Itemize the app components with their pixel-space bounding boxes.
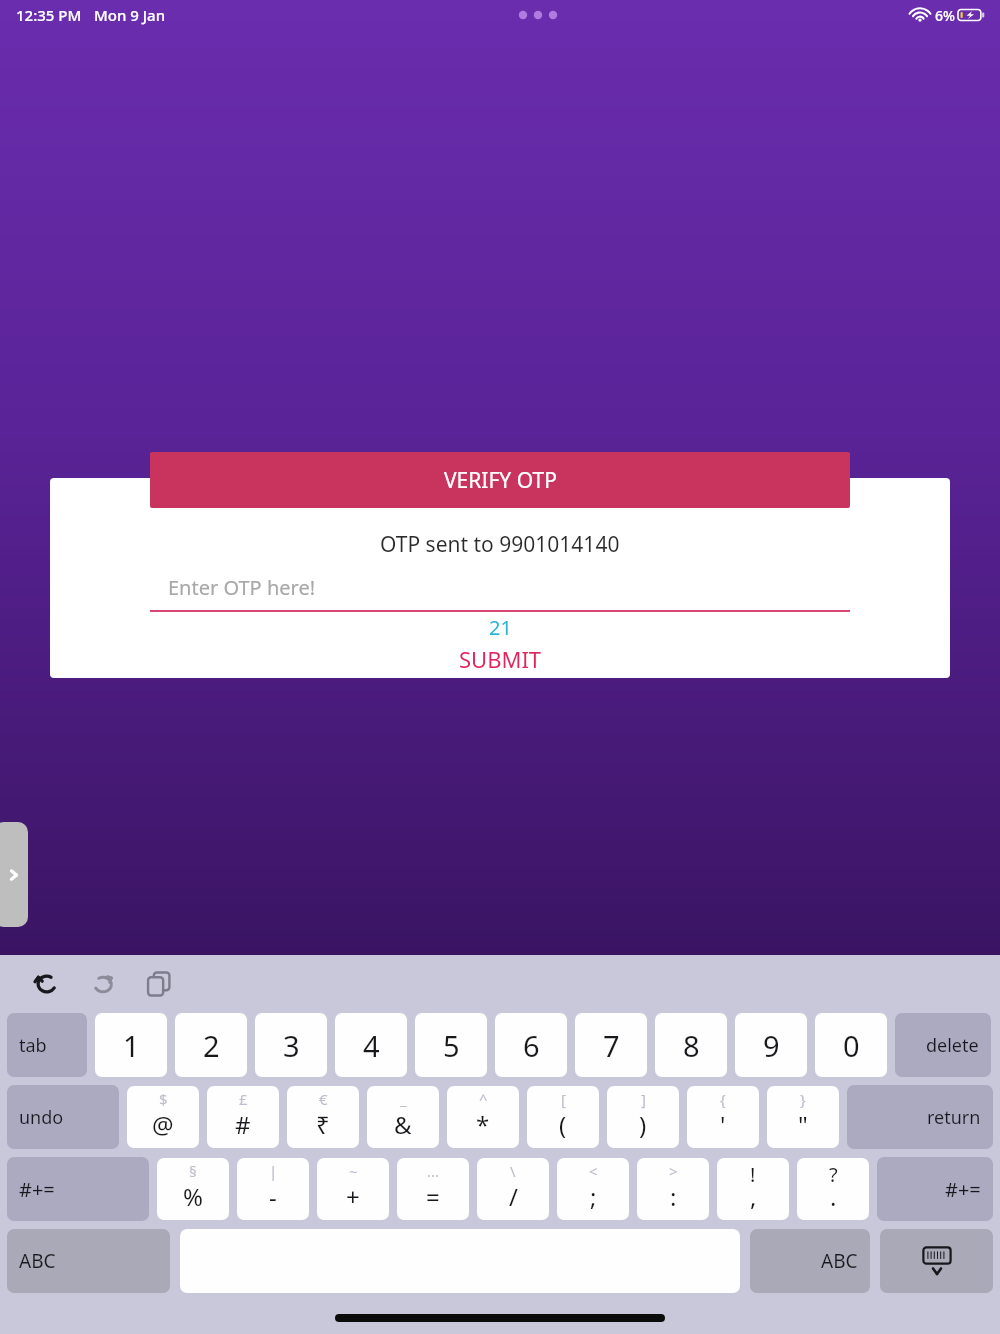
button[interactable]: Paste	[138, 963, 180, 1005]
button[interactable]: 6	[495, 1013, 567, 1077]
staticText: VERIFY OTP	[444, 466, 557, 495]
staticText: OTP sent to 9901014140	[380, 530, 620, 559]
staticText: tab	[19, 1033, 47, 1058]
button[interactable]: Open slide over	[0, 822, 28, 927]
button[interactable]: ABC	[7, 1229, 170, 1293]
button[interactable]: ?	[797, 1158, 869, 1220]
staticText: )	[639, 1108, 647, 1141]
button[interactable]: {	[687, 1086, 759, 1148]
staticText: 1	[123, 1026, 140, 1065]
button[interactable]: €	[287, 1086, 359, 1148]
staticText: |	[269, 1161, 278, 1181]
button[interactable]: }	[767, 1086, 839, 1148]
button[interactable]: |	[237, 1158, 309, 1220]
staticText: >	[669, 1161, 678, 1181]
staticText: (	[559, 1108, 567, 1141]
staticText: ~	[349, 1161, 358, 1181]
staticText: §	[189, 1161, 197, 1181]
button[interactable]: \	[477, 1158, 549, 1220]
button[interactable]: 1	[95, 1013, 167, 1077]
staticText: delete	[926, 1033, 979, 1058]
staticText: -	[269, 1180, 277, 1213]
button[interactable]: ]	[607, 1086, 679, 1148]
staticText: €	[319, 1089, 328, 1109]
button[interactable]: _	[367, 1086, 439, 1148]
button[interactable]: <	[557, 1158, 629, 1220]
staticText: undo	[19, 1105, 64, 1130]
staticText: 9	[763, 1026, 780, 1065]
staticText: Enter OTP here!	[168, 574, 316, 601]
button[interactable]: [	[527, 1086, 599, 1148]
button[interactable]: Hide keyboard	[880, 1229, 993, 1293]
button[interactable]: >	[637, 1158, 709, 1220]
button[interactable]: !	[717, 1158, 789, 1220]
button[interactable]: 9	[735, 1013, 807, 1077]
button[interactable]: ^	[447, 1086, 519, 1148]
staticText: 2	[203, 1026, 220, 1065]
button[interactable]: …	[397, 1158, 469, 1220]
staticText: 5	[443, 1026, 460, 1065]
staticText: ^	[479, 1089, 488, 1109]
button[interactable]: £	[207, 1086, 279, 1148]
button[interactable]: $	[127, 1086, 199, 1148]
button[interactable]: delete	[895, 1013, 991, 1077]
button[interactable]: #+=	[7, 1157, 149, 1221]
staticText: <	[589, 1161, 598, 1181]
staticText: return	[927, 1105, 981, 1130]
staticText: 8	[683, 1026, 700, 1065]
staticText: 21	[489, 614, 512, 641]
staticText: \	[510, 1161, 516, 1181]
button[interactable]: 8	[655, 1013, 727, 1077]
staticText: ABC	[821, 1248, 858, 1274]
staticText: 12:35 PM	[16, 5, 82, 25]
staticText: #	[235, 1108, 251, 1141]
button[interactable]: Undo	[26, 963, 68, 1005]
staticText: 6	[523, 1026, 540, 1065]
staticText: 0	[843, 1026, 860, 1065]
staticText: ?	[829, 1161, 838, 1188]
staticText: ,	[750, 1180, 757, 1213]
button[interactable]: VERIFY OTP	[150, 452, 850, 508]
button[interactable]: §	[157, 1158, 229, 1220]
button[interactable]: SUBMIT	[459, 644, 542, 674]
button[interactable]: ~	[317, 1158, 389, 1220]
staticText: 4	[363, 1026, 380, 1065]
staticText: }	[800, 1089, 806, 1109]
button[interactable]: 4	[335, 1013, 407, 1077]
staticText: 6%	[935, 6, 955, 25]
button[interactable]: return	[847, 1085, 993, 1149]
button[interactable]: 2	[175, 1013, 247, 1077]
button[interactable]: undo	[7, 1085, 119, 1149]
staticText: _	[400, 1089, 407, 1109]
staticText: !	[750, 1161, 756, 1188]
staticText: 3	[283, 1026, 300, 1065]
staticText: *	[476, 1108, 490, 1141]
button[interactable]: Enter OTP here!	[150, 568, 850, 612]
staticText: ₹	[316, 1108, 330, 1141]
staticText: 7	[603, 1026, 620, 1065]
button[interactable]: ABC	[750, 1229, 870, 1293]
staticText: [	[561, 1089, 566, 1109]
button[interactable]: 5	[415, 1013, 487, 1077]
staticText: {	[720, 1089, 726, 1109]
staticText: …	[427, 1161, 439, 1181]
staticText: .	[830, 1180, 837, 1213]
staticText: #+=	[19, 1176, 55, 1203]
staticText: $	[159, 1089, 168, 1109]
staticText: @	[152, 1108, 174, 1141]
button[interactable]: 0	[815, 1013, 887, 1077]
staticText: &	[394, 1108, 412, 1141]
staticText: '	[720, 1108, 726, 1141]
staticText: Mon 9 Jan	[94, 5, 166, 25]
staticText: %	[183, 1180, 203, 1213]
button[interactable]: Redo	[82, 963, 124, 1005]
button[interactable]: 7	[575, 1013, 647, 1077]
staticText: £	[239, 1089, 248, 1109]
button[interactable]: tab	[7, 1013, 87, 1077]
staticText: ;	[590, 1180, 597, 1213]
button[interactable]: 3	[255, 1013, 327, 1077]
staticText: SUBMIT	[459, 644, 542, 674]
button[interactable]: #+=	[877, 1157, 993, 1221]
staticText: "	[798, 1108, 808, 1141]
